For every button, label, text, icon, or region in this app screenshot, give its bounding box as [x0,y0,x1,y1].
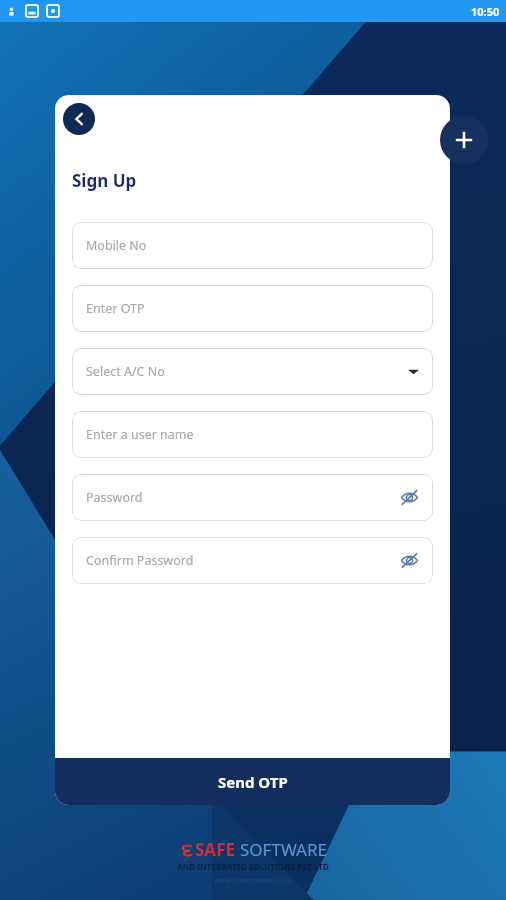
staticText: Password [86,489,143,506]
staticText: Enter OTP [86,300,145,317]
button[interactable]: Send OTP [55,758,450,805]
button[interactable]: Enter a user name [72,411,433,458]
staticText: Mobile No [86,237,147,254]
staticText: AND INTEGRATED SOLUTIONS PVT LTD [177,861,329,872]
staticText: SOFTWARE [240,838,327,861]
staticText: SAFE [195,838,235,861]
staticText: Select A/C No [86,363,165,380]
staticText: Confirm Password [86,552,194,569]
button[interactable]: Password [72,474,433,521]
button[interactable]: Select A/C No [72,348,433,395]
button[interactable]: Add [440,116,488,164]
staticText: Sign Up [72,169,137,192]
staticText: Enter a user name [86,426,194,443]
staticText: 10:50 [471,4,500,19]
button[interactable]: Confirm Password [72,537,433,584]
button[interactable]: Mobile No [72,222,433,269]
button[interactable]: Enter OTP [72,285,433,332]
button[interactable]: Back [63,103,95,135]
staticText: Send OTP [218,772,288,792]
staticText: www.safesoftware.co.in [214,876,292,886]
